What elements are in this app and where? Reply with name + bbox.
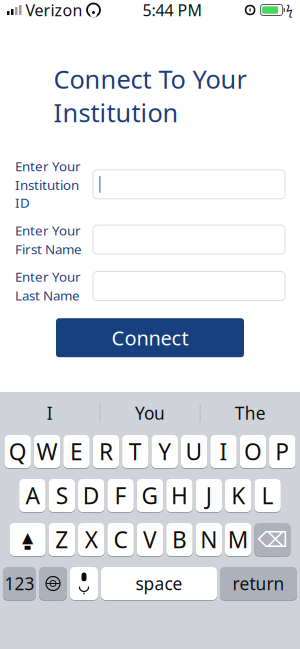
button[interactable]: P [269, 434, 295, 469]
staticText: Verizon [25, 0, 82, 21]
staticText: X [85, 524, 98, 554]
staticText: ⌫ [257, 527, 287, 552]
staticText: J [206, 480, 212, 510]
staticText: ▲ [22, 529, 33, 546]
staticText: I [219, 436, 227, 466]
staticText: Y [158, 436, 171, 466]
staticText: S [56, 480, 68, 510]
staticText: return [232, 572, 284, 595]
staticText: Z [55, 524, 68, 554]
button[interactable]: X [78, 522, 104, 557]
staticText: 5:44 PM [143, 0, 203, 21]
button[interactable]: Next keyboard [39, 566, 67, 601]
staticText: K [231, 480, 245, 510]
staticText: First Name [15, 240, 82, 258]
staticText: The [235, 401, 266, 424]
button[interactable]: return [220, 566, 297, 601]
button[interactable]: K [225, 478, 251, 513]
button[interactable]: 123 [3, 566, 36, 601]
staticText: Last Name [15, 286, 80, 304]
staticText: T [129, 436, 142, 466]
staticText: R [99, 436, 113, 466]
staticText: 123 [4, 572, 34, 595]
button[interactable]: You [100, 401, 200, 424]
staticText: O [244, 436, 262, 466]
button[interactable]: T [122, 434, 148, 469]
staticText: M [228, 524, 249, 554]
staticText: H [171, 480, 188, 510]
staticText: W [37, 436, 58, 466]
button[interactable]: Q [4, 434, 31, 469]
button[interactable]: S [49, 478, 75, 513]
staticText: D [83, 480, 100, 510]
staticText: ϟ [286, 2, 293, 18]
staticText: I [47, 401, 53, 424]
staticText: Connect [111, 324, 188, 351]
button[interactable]: Shift [10, 522, 46, 557]
button[interactable]: Dictate [70, 566, 98, 601]
button[interactable]: Enter Your Institution ID [93, 170, 285, 199]
staticText: E [70, 436, 83, 466]
button[interactable]: Connect [56, 318, 244, 357]
button[interactable]: N [196, 522, 222, 557]
staticText: L [262, 480, 274, 510]
button[interactable]: I [0, 401, 99, 424]
button[interactable]: U [181, 434, 207, 469]
staticText: Enter Your [15, 157, 81, 175]
staticText: Q [9, 436, 27, 466]
staticText: A [25, 480, 39, 510]
button[interactable]: Enter Your First Name [93, 225, 285, 254]
staticText: space [135, 572, 182, 595]
button[interactable]: O [240, 434, 266, 469]
staticText: Connect To Your Institution [53, 62, 246, 129]
staticText: You [135, 401, 165, 424]
staticText: Institution ID [15, 176, 79, 211]
button[interactable]: V [137, 522, 163, 557]
button[interactable]: J [196, 478, 222, 513]
staticText: C [114, 524, 128, 554]
button[interactable]: G [137, 478, 163, 513]
button[interactable]: The [201, 401, 300, 424]
button[interactable]: Z [49, 522, 75, 557]
staticText: F [115, 480, 127, 510]
staticText: Enter Your [15, 268, 81, 285]
button[interactable]: R [93, 434, 119, 469]
staticText: P [275, 436, 289, 466]
staticText: N [200, 524, 217, 554]
button[interactable]: W [34, 434, 60, 469]
button[interactable]: B [166, 522, 193, 557]
staticText: B [172, 524, 187, 554]
button[interactable]: M [225, 522, 251, 557]
staticText: Enter Your [15, 221, 81, 239]
button[interactable]: space [101, 566, 217, 601]
button[interactable]: Y [151, 434, 178, 469]
staticText: U [186, 436, 203, 466]
button[interactable]: E [63, 434, 90, 469]
button[interactable]: F [107, 478, 134, 513]
button[interactable]: A [19, 478, 46, 513]
button[interactable]: C [107, 522, 134, 557]
button[interactable]: L [254, 478, 281, 513]
button[interactable]: I [210, 434, 237, 469]
button[interactable]: D [78, 478, 104, 513]
staticText: G [141, 480, 158, 510]
button[interactable]: H [166, 478, 193, 513]
staticText: V [143, 524, 157, 554]
button[interactable]: Delete [254, 522, 290, 557]
